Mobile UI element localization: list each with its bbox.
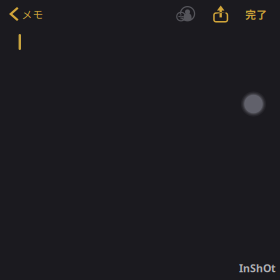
button[interactable]: 完了 — [238, 0, 280, 28]
button[interactable]: Add People — [170, 0, 201, 28]
button[interactable]: メモ — [0, 0, 51, 28]
staticText: メモ — [21, 6, 43, 22]
staticText: 完了 — [245, 6, 267, 22]
button[interactable]: Share — [201, 0, 238, 28]
staticText: InShOt — [239, 261, 276, 275]
